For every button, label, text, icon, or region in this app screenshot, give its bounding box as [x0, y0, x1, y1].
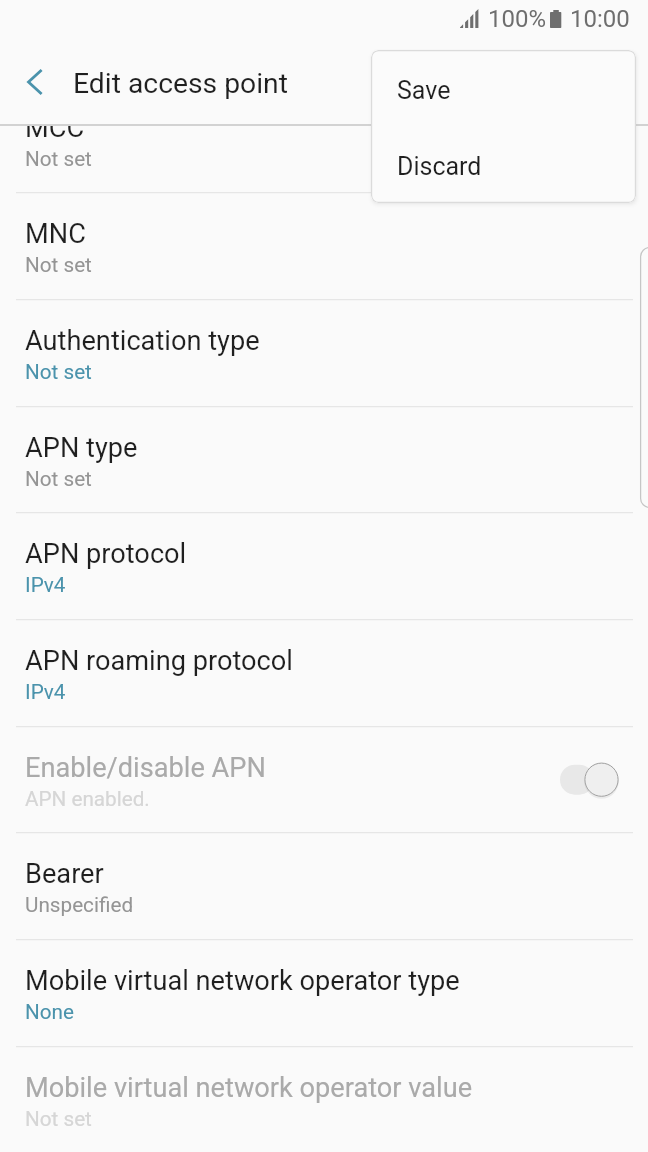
staticText: Save: [397, 76, 451, 105]
staticText: APN roaming protocol: [25, 645, 293, 677]
staticText: 10:00: [570, 5, 630, 33]
button[interactable]: APN roaming protocol: [0, 619, 648, 726]
staticText: Authentication type: [25, 325, 260, 357]
staticText: MNC: [25, 218, 86, 250]
staticText: 100%: [488, 5, 547, 33]
staticText: Not set: [25, 467, 92, 491]
button[interactable]: Discard: [371, 127, 636, 203]
staticText: Edit access point: [73, 67, 288, 100]
staticText: Mobile virtual network operator value: [25, 1072, 473, 1104]
button[interactable]: Enable or disable APN: [552, 757, 628, 801]
staticText: Mobile virtual network operator type: [25, 965, 460, 997]
staticText: Not set: [25, 253, 92, 277]
button[interactable]: Enable/disable APN: [0, 726, 648, 833]
staticText: IPv4: [25, 680, 66, 704]
staticText: APN type: [25, 432, 138, 464]
button[interactable]: Bearer: [0, 832, 648, 939]
staticText: APN enabled.: [25, 787, 150, 811]
staticText: None: [25, 1000, 74, 1024]
staticText: APN protocol: [25, 538, 187, 570]
button[interactable]: Mobile virtual network operator value: [0, 1046, 648, 1152]
button[interactable]: MNC: [0, 192, 648, 299]
staticText: MCC: [25, 126, 85, 144]
button[interactable]: Authentication type: [0, 299, 648, 406]
button[interactable]: MCC: [0, 126, 648, 193]
button[interactable]: Mobile virtual network operator type: [0, 939, 648, 1046]
staticText: Not set: [25, 147, 92, 171]
staticText: Not set: [25, 1107, 92, 1131]
button[interactable]: APN protocol: [0, 512, 648, 619]
staticText: IPv4: [25, 573, 66, 597]
button[interactable]: Save: [371, 50, 636, 127]
staticText: Bearer: [25, 858, 104, 890]
staticText: Unspecified: [25, 893, 134, 917]
staticText: Discard: [397, 152, 482, 181]
button[interactable]: Navigate up: [7, 54, 63, 110]
staticText: Not set: [25, 360, 92, 384]
button[interactable]: APN type: [0, 406, 648, 513]
staticText: Enable/disable APN: [25, 752, 266, 784]
